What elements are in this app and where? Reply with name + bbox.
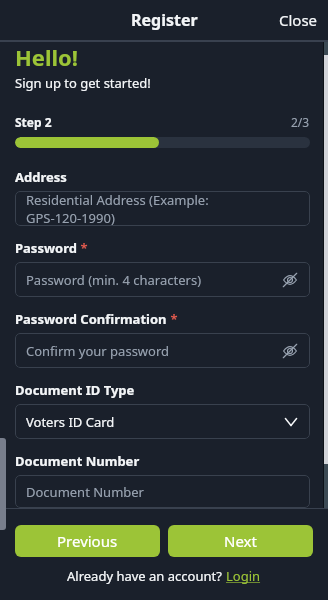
staticText: Voters ID Card — [26, 413, 115, 431]
button[interactable]: Residential Address (Example: GPS-120-19… — [15, 191, 310, 226]
staticText: Document Number — [26, 483, 144, 501]
other: Show password — [282, 272, 298, 288]
staticText: Next — [224, 531, 257, 551]
staticText: Document ID Type — [15, 381, 135, 399]
button[interactable]: Next — [168, 525, 313, 557]
button[interactable]: Close — [269, 1, 328, 39]
button[interactable]: Confirm your password — [15, 333, 310, 368]
staticText: Close — [279, 10, 318, 30]
staticText: Step 2 — [15, 114, 52, 130]
staticText: Register — [131, 9, 198, 31]
staticText: Password — [15, 239, 77, 257]
staticText: * — [167, 310, 178, 328]
staticText: Login — [226, 567, 261, 585]
button[interactable]: Voters ID Card — [15, 404, 310, 439]
staticText: Password Confirmation — [15, 310, 167, 328]
staticText: * — [77, 239, 88, 257]
other: Open dropdown — [282, 413, 300, 431]
staticText: Sign up to get started! — [15, 74, 151, 92]
staticText: Previous — [57, 531, 118, 551]
staticText: Residential Address (Example: GPS-120-19… — [26, 191, 298, 226]
staticText: Already have an account? — [67, 567, 226, 585]
staticText: Confirm your password — [26, 342, 170, 360]
staticText: Document Number — [15, 452, 140, 470]
button[interactable]: Document Number — [15, 475, 310, 508]
other: Show password — [282, 343, 298, 359]
button[interactable]: Previous — [15, 525, 160, 557]
staticText: Password (min. 4 characters) — [26, 271, 202, 289]
staticText: Hello! — [15, 42, 79, 72]
staticText: Address — [15, 168, 67, 186]
button[interactable]: Login — [226, 567, 261, 585]
button[interactable]: Password (min. 4 characters) — [15, 262, 310, 297]
staticText: 2/3 — [291, 114, 310, 130]
